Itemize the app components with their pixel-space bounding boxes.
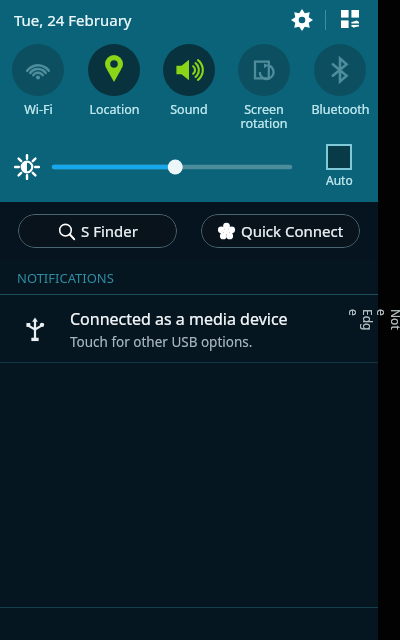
staticText: Location (89, 101, 140, 118)
button[interactable]: Settings (285, 3, 319, 37)
button[interactable]: Brightness slider (54, 152, 304, 182)
button[interactable]: Screen rotation (227, 44, 301, 132)
staticText: Quick Connect (241, 221, 344, 241)
button[interactable]: Connected as a media device (0, 295, 378, 363)
staticText: Galaxy Note Edge (346, 309, 400, 331)
button[interactable]: Location (77, 44, 151, 118)
staticText: Bluetooth (311, 101, 370, 118)
staticText: Wi-Fi (24, 101, 53, 118)
button[interactable]: Quick Connect (201, 214, 360, 248)
button[interactable]: Wi-Fi (1, 44, 75, 118)
staticText: Connected as a media device (70, 308, 288, 330)
button[interactable]: Brightness (12, 152, 42, 182)
staticText: S Finder (81, 221, 138, 241)
staticText: Sound (170, 101, 208, 118)
staticText: NOTIFICATIONS (17, 269, 114, 287)
button[interactable]: Bluetooth (303, 44, 377, 118)
button[interactable]: Edit quick settings (334, 3, 368, 37)
button[interactable]: S Finder (18, 214, 177, 248)
staticText: Tue, 24 February (14, 10, 132, 30)
staticText: Screen rotation (240, 101, 288, 132)
button[interactable]: Sound (152, 44, 226, 118)
staticText: Touch for other USB options. (70, 333, 253, 351)
button[interactable]: Auto (314, 140, 364, 188)
staticText: Auto (326, 172, 353, 188)
